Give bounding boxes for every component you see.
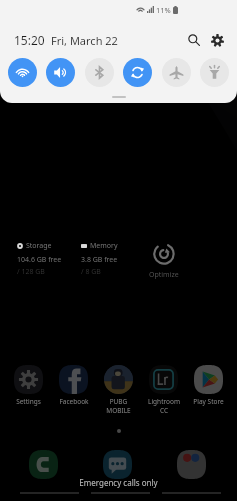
button[interactable]: Bluetooth [85,58,114,87]
button[interactable]: Storage [17,241,81,277]
button[interactable]: Settings [6,365,51,406]
button[interactable]: Facebook [51,365,96,406]
button[interactable]: Optimize [144,243,184,280]
staticText: Fri, March 22 [51,33,118,48]
staticText: / 8 GB [81,267,101,277]
staticText: Emergency calls only [0,477,237,488]
button[interactable]: Wi-Fi [8,58,37,87]
button[interactable]: Airplane mode [162,58,191,87]
staticText: / 128 GB [17,267,45,277]
staticText: Play Store [193,397,224,406]
button[interactable]: Messages [103,450,132,479]
staticText: 3.8 GB free [81,255,118,265]
staticText: PUBG MOBILE [106,397,131,415]
staticText: 104.6 GB free [17,255,62,265]
staticText: 15:20 [14,32,45,48]
button[interactable]: Camera [177,450,206,479]
staticText: Optimize [149,270,179,280]
button[interactable]: Flashlight [200,58,229,87]
button[interactable]: Play Store [186,365,231,406]
button[interactable]: Auto rotate [123,58,152,87]
staticText: Lightroom CC [148,397,180,415]
staticText: Settings [16,397,41,406]
staticText: Memory [90,241,118,251]
button[interactable]: Settings [206,29,228,51]
staticText: Storage [26,241,52,251]
button[interactable]: Memory [81,241,145,277]
button[interactable]: Lightroom CC [141,365,186,415]
staticText: Facebook [59,397,89,406]
button[interactable]: PUBG MOBILE [96,365,141,415]
button[interactable]: Phone [29,450,58,479]
staticText: 11% [156,5,171,15]
button[interactable]: Search [183,29,205,51]
button[interactable]: Sound [46,58,75,87]
